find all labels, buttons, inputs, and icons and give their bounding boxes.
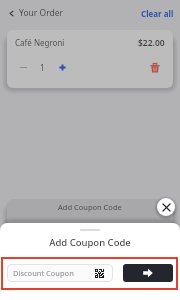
staticText: Add Coupon Code — [49, 236, 131, 249]
button[interactable]: Add Coupon Code — [7, 199, 173, 225]
button[interactable]: Your Order — [6, 3, 66, 23]
button[interactable]: Clear all — [139, 3, 176, 24]
staticText: Clear all — [141, 8, 174, 19]
staticText: Your Order — [19, 7, 64, 19]
staticText: $22.00 — [138, 37, 165, 49]
button[interactable]: Decrease quantity — [15, 59, 31, 75]
button[interactable]: Delete item — [147, 60, 163, 76]
staticText: Add Coupon Code — [58, 202, 122, 212]
button[interactable]: Discount Coupon — [7, 264, 113, 282]
staticText: 1 — [40, 62, 45, 73]
staticText: Discount Coupon — [13, 268, 74, 278]
button[interactable]: Increase quantity — [54, 59, 70, 75]
button[interactable]: Apply coupon — [123, 264, 173, 282]
staticText: Café Negroni — [15, 37, 65, 48]
button[interactable]: Close — [157, 198, 175, 216]
